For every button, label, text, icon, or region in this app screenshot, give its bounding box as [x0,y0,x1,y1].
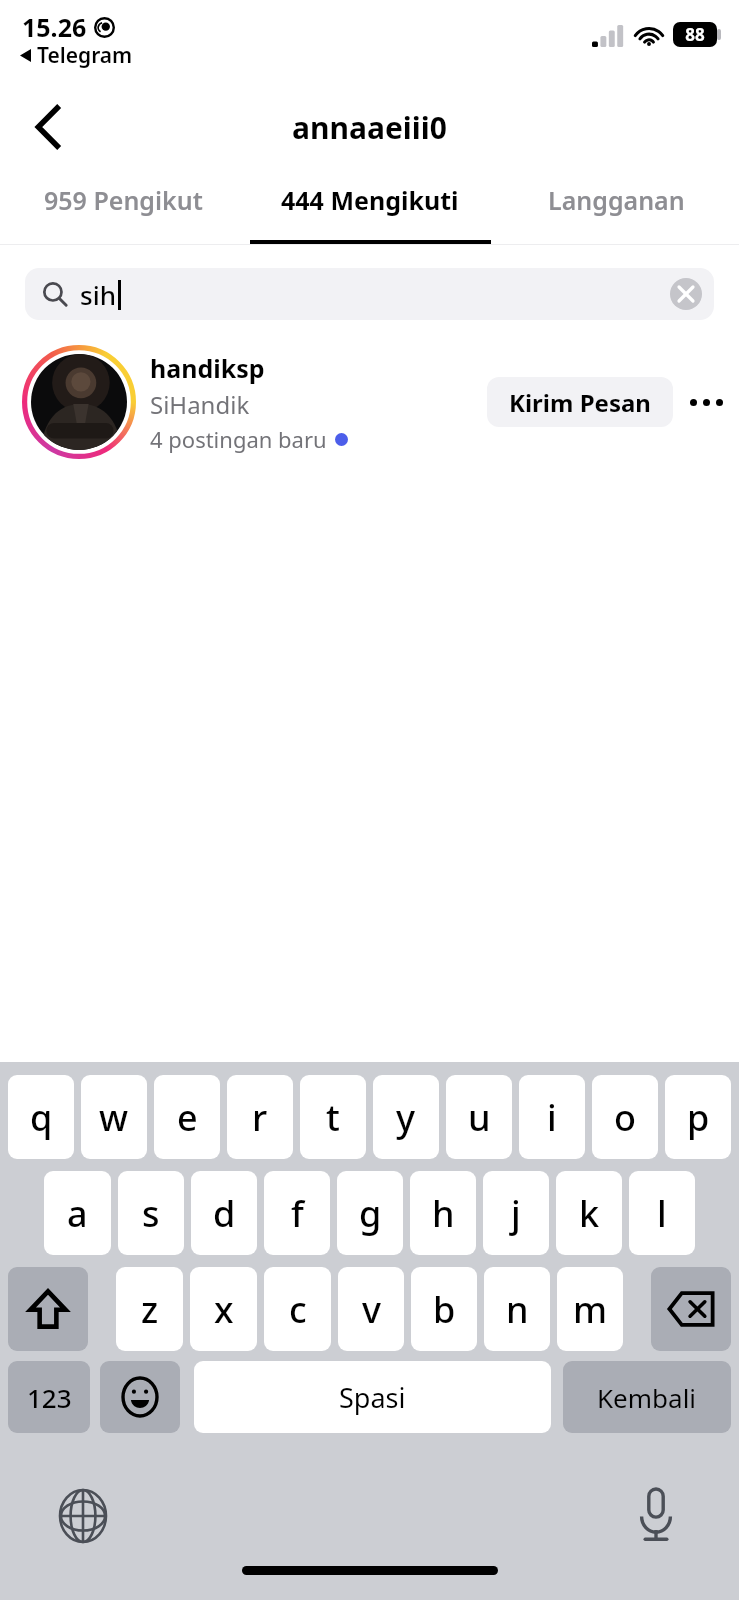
staticText: b [433,1285,456,1334]
button[interactable]: w [81,1075,147,1159]
button[interactable]: t [300,1075,366,1159]
button[interactable]: Back [18,97,78,157]
staticText: g [359,1189,382,1238]
staticText: s [142,1189,160,1238]
button[interactable]: Change keyboard [56,1489,110,1543]
staticText: m [573,1285,608,1334]
button[interactable]: p [665,1075,731,1159]
button[interactable]: b [411,1267,477,1351]
button[interactable]: r [227,1075,293,1159]
staticText: Kembali [597,1380,697,1415]
staticText: i [547,1093,557,1142]
staticText: e [177,1093,198,1142]
button[interactable]: Spasi [194,1361,551,1433]
staticText: Langganan [548,183,685,217]
button[interactable]: Emoji [100,1361,180,1433]
button[interactable]: More options [673,372,739,432]
staticText: n [506,1285,529,1334]
staticText: handiksp [150,351,265,385]
staticText: o [614,1093,636,1142]
staticText: 4 postingan baru [150,424,327,454]
staticText: 123 [27,1380,72,1415]
button[interactable]: d [191,1171,257,1255]
button[interactable]: q [8,1075,74,1159]
staticText: r [252,1093,268,1142]
staticText: u [468,1093,491,1142]
button[interactable]: s [118,1171,184,1255]
staticText: Telegram [37,41,133,70]
button[interactable]: m [557,1267,623,1351]
button[interactable]: sih [25,268,714,320]
staticText: y [396,1093,416,1142]
button[interactable]: u [446,1075,512,1159]
button[interactable]: handiksp [0,343,739,461]
button[interactable]: Clear [670,278,702,310]
button[interactable]: a [44,1171,111,1255]
button[interactable]: z [116,1267,183,1351]
button[interactable]: 444 Mengikuti [247,168,493,244]
button[interactable]: Shift [8,1267,88,1351]
staticText: 88 [685,23,705,46]
button[interactable]: x [190,1267,257,1351]
staticText: w [99,1093,129,1142]
staticText: t [326,1093,340,1142]
button[interactable]: Kembali [563,1361,731,1433]
button[interactable]: i [519,1075,585,1159]
staticText: a [67,1189,88,1238]
staticText: 15.26 [22,10,87,44]
staticText: annaaeiii0 [292,107,447,148]
staticText: x [214,1285,234,1334]
staticText: Spasi [339,1379,406,1416]
staticText: z [141,1285,159,1334]
staticText: SiHandik [150,388,250,421]
button[interactable]: n [484,1267,550,1351]
button[interactable]: 123 [8,1361,90,1433]
button[interactable]: v [338,1267,404,1351]
button[interactable]: j [483,1171,549,1255]
staticText: c [289,1285,307,1334]
staticText: h [432,1189,455,1238]
button[interactable]: g [337,1171,403,1255]
staticText: 959 Pengikut [44,183,203,217]
button[interactable]: y [373,1075,439,1159]
button[interactable]: e [154,1075,220,1159]
button[interactable]: c [264,1267,331,1351]
staticText: Kirim Pesan [509,386,651,419]
staticText: j [511,1189,521,1238]
staticText: f [291,1189,304,1238]
button[interactable]: Backspace [651,1267,731,1351]
staticText: p [687,1093,710,1142]
staticText: 444 Mengikuti [281,183,459,217]
staticText: d [213,1189,236,1238]
staticText: k [579,1189,600,1238]
button[interactable]: h [410,1171,476,1255]
button[interactable]: l [629,1171,695,1255]
button[interactable]: 959 Pengikut [0,168,247,244]
button[interactable]: Kirim Pesan [487,377,673,427]
staticText: l [657,1189,667,1238]
staticText: q [30,1093,53,1142]
button[interactable]: Voice input [629,1489,683,1543]
button[interactable]: o [592,1075,658,1159]
button[interactable]: Langganan [493,168,739,244]
button[interactable]: f [264,1171,330,1255]
staticText: sih [80,277,116,312]
button[interactable]: k [556,1171,622,1255]
staticText: v [362,1285,381,1334]
